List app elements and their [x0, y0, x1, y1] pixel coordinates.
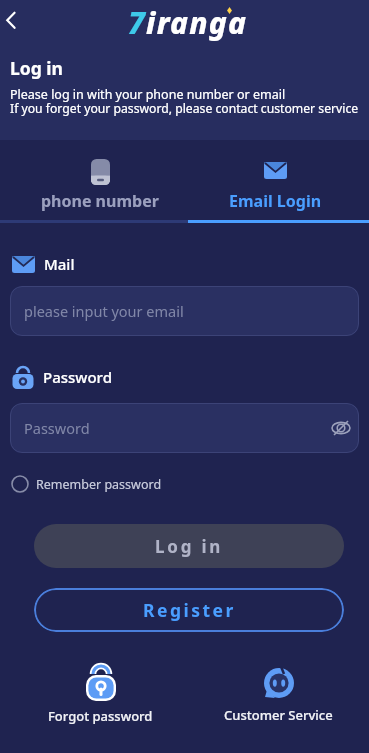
button[interactable]: Customer Service [224, 661, 333, 724]
staticText: Mail [44, 254, 75, 274]
button[interactable]: please input your email [10, 286, 359, 336]
button[interactable]: phone number [0, 140, 188, 220]
staticText: phone number [41, 190, 159, 212]
button[interactable]: Password [10, 403, 359, 453]
staticText: If you forget your password, please cont… [10, 100, 359, 117]
staticText: Register [143, 598, 236, 622]
staticText: Please log in with your phone number or … [10, 86, 286, 103]
button[interactable] [0, 6, 28, 34]
staticText: Forgot password [48, 707, 153, 725]
staticText: Password [43, 367, 112, 387]
staticText: Email Login [229, 190, 322, 212]
staticText: Customer Service [224, 706, 333, 724]
staticText: please input your email [24, 301, 184, 321]
staticText: Remember password [36, 476, 162, 493]
button[interactable]: Email Login [188, 140, 369, 220]
button[interactable]: Forgot password [48, 661, 153, 725]
staticText: Log in [10, 56, 63, 80]
button[interactable]: Log in [34, 524, 344, 568]
button[interactable]: Remember password [11, 475, 162, 493]
button[interactable]: Register [34, 588, 344, 632]
staticText: Password [24, 418, 90, 438]
staticText: Log in [155, 535, 224, 558]
staticText: 7iranga [128, 2, 248, 43]
